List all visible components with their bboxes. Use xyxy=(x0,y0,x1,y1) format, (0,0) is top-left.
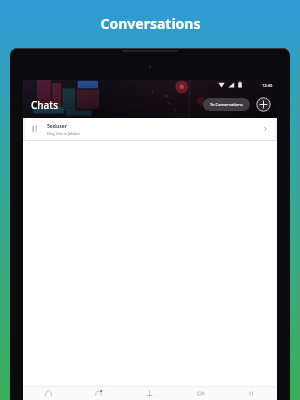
staticText: Conversations xyxy=(100,14,201,33)
button[interactable]: Profile xyxy=(226,386,277,400)
button[interactable]: 5eduser xyxy=(25,118,275,140)
staticText: 12:00 xyxy=(262,83,273,88)
staticText: Hey, this is Jabber xyxy=(47,131,81,136)
button[interactable]: Home xyxy=(23,386,73,400)
staticText: To Conversations xyxy=(210,102,243,107)
button[interactable]: New conversation xyxy=(256,97,271,112)
button[interactable]: Camera xyxy=(175,386,226,400)
staticText: 5eduser xyxy=(47,123,67,130)
button[interactable]: To Conversations xyxy=(203,98,250,111)
staticText: Chats xyxy=(31,98,59,112)
button[interactable]: Add xyxy=(124,386,175,400)
button[interactable]: Notifications xyxy=(73,386,124,400)
